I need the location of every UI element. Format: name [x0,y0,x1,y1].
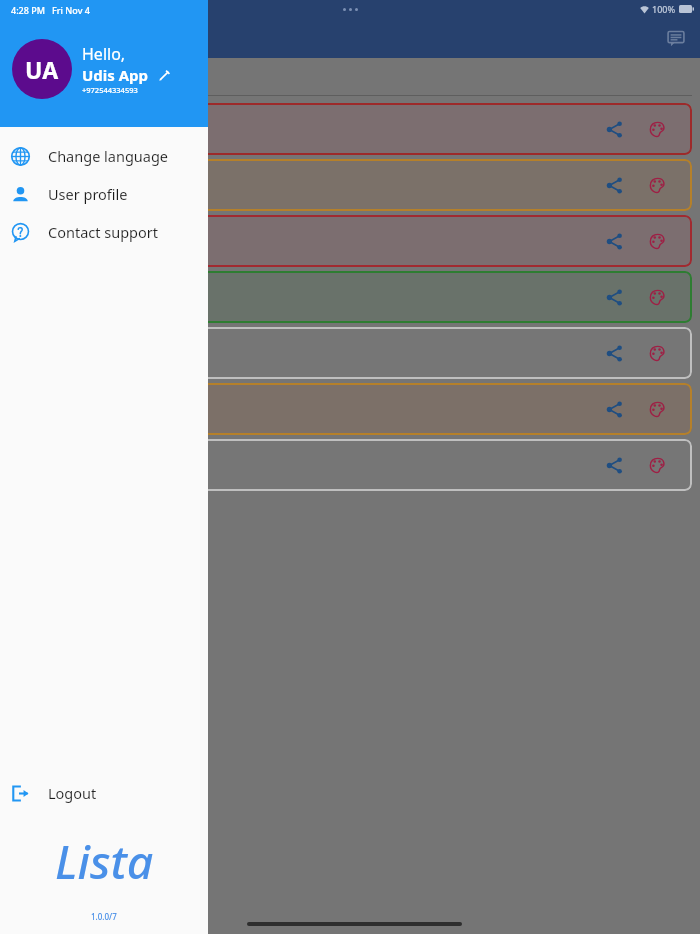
button[interactable]: Share [601,116,627,142]
button[interactable]: Share [8,271,692,323]
staticText: Hello, [82,43,126,65]
staticText: Change language [48,146,169,166]
staticText: +972544334593 [82,85,138,95]
button[interactable]: Change colour [644,452,670,478]
button[interactable]: Messages [660,22,692,54]
button[interactable]: Edit profile [155,66,173,84]
staticText: 1.0.0/7 [91,911,117,922]
button[interactable]: Create new list [0,58,700,96]
button[interactable]: Share [601,284,627,310]
button[interactable]: Change colour [644,396,670,422]
staticText: Fri Nov 4 [52,4,90,16]
button[interactable]: Contact support [0,213,208,251]
button[interactable]: Change colour [644,284,670,310]
staticText: My Lists Names [80,27,205,50]
button[interactable]: Share [8,327,692,379]
staticText: 4:28 PM [11,4,45,16]
button[interactable]: Share [601,172,627,198]
button[interactable]: UA [12,39,72,99]
button[interactable]: Share [601,452,627,478]
button[interactable]: Share [8,159,692,211]
staticText: Create new list [93,67,197,87]
button[interactable]: Change colour [644,116,670,142]
button[interactable]: Share [601,340,627,366]
button[interactable]: Share [601,396,627,422]
staticText: UA [25,54,59,85]
button[interactable]: Logout [0,774,208,812]
button[interactable]: Change colour [644,340,670,366]
staticText: Logout [48,783,97,803]
button[interactable]: Change colour [644,228,670,254]
button[interactable]: Share [8,103,692,155]
button[interactable]: Share [8,215,692,267]
button[interactable]: User profile [0,175,208,213]
button[interactable]: Change language [0,137,208,175]
button[interactable]: Share [8,439,692,491]
staticText: Lista [55,830,154,893]
staticText: 100% [652,3,676,15]
button[interactable]: Change colour [644,172,670,198]
staticText: Contact support [48,222,158,242]
staticText: Udis App [82,65,149,85]
button[interactable]: Share [8,383,692,435]
button[interactable]: Share [601,228,627,254]
staticText: User profile [48,184,128,204]
